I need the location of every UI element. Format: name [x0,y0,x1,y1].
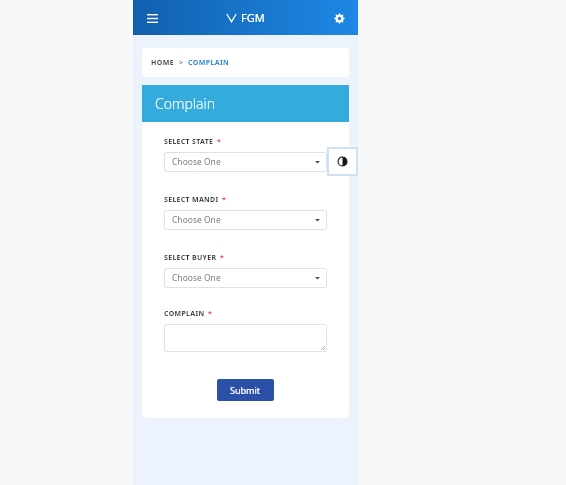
button[interactable]: HOME [151,58,175,68]
staticText: Choose One [172,156,221,168]
staticText: SELECT STATE [164,137,214,147]
staticText: Choose One [172,272,221,284]
staticText: * [222,195,226,205]
staticText: * [217,137,221,147]
button[interactable]: Submit [217,379,274,401]
staticText: * [208,309,212,319]
button[interactable]: Menu [141,7,163,29]
staticText: > [179,58,184,68]
button[interactable]: Choose One [164,268,327,288]
staticText: SELECT BUYER [164,253,217,263]
button[interactable]: Choose One [164,210,327,230]
staticText: FGM [241,10,265,25]
staticText: Complain [155,94,216,113]
button[interactable]: Settings [328,7,350,29]
staticText: HOME [151,58,175,68]
staticText: SELECT MANDI [164,195,219,205]
staticText: * [220,253,224,263]
staticText: COMPLAIN [164,309,205,319]
button[interactable]: Choose One [164,152,327,172]
button[interactable]: Toggle contrast [329,149,356,174]
staticText: Submit [230,384,261,396]
staticText: Choose One [172,214,221,226]
staticText: COMPLAIN [188,58,230,68]
button[interactable] [164,324,327,352]
